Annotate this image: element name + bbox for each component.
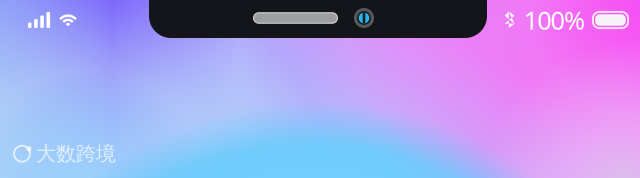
staticText: 大数跨境 bbox=[36, 141, 116, 166]
staticText: 100% bbox=[524, 3, 585, 37]
